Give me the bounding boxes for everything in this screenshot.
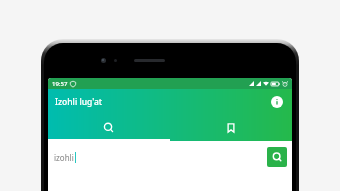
button[interactable]: izohli bbox=[54, 147, 263, 167]
staticText: izohli bbox=[54, 152, 74, 163]
button[interactable]: Search bbox=[267, 147, 287, 167]
staticText: 19:57 bbox=[52, 80, 68, 88]
button[interactable]: Search tab bbox=[48, 115, 170, 141]
button[interactable]: Saved tab bbox=[170, 115, 292, 141]
button[interactable]: Info bbox=[267, 92, 287, 112]
staticText: Izohli lug'at bbox=[55, 96, 103, 108]
